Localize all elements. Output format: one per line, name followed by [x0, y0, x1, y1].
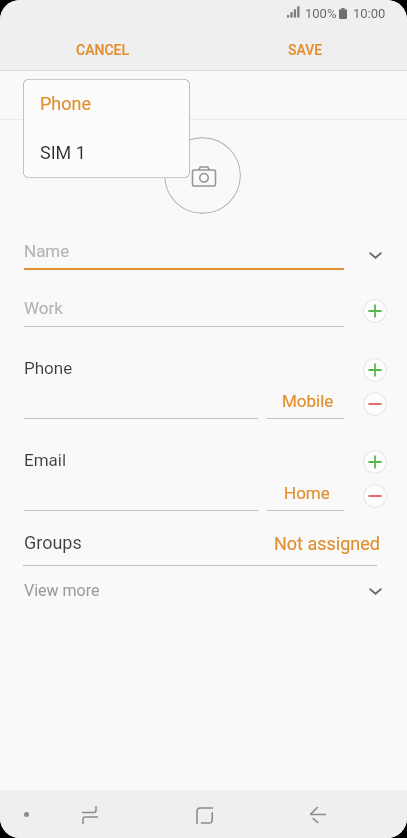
staticText: Home: [284, 483, 330, 503]
button[interactable]: Home: [183, 792, 227, 838]
button[interactable]: Back: [296, 791, 340, 838]
staticText: CANCEL: [76, 42, 130, 58]
staticText: Phone: [40, 93, 92, 114]
staticText: Name: [24, 241, 70, 261]
button[interactable]: Remove: [363, 484, 387, 508]
staticText: Mobile: [282, 391, 334, 411]
button[interactable]: Remove: [363, 392, 387, 416]
button[interactable]: Add: [363, 299, 387, 323]
staticText: Phone: [24, 358, 73, 378]
staticText: Work: [24, 298, 63, 318]
button[interactable]: Groups: [0, 524, 407, 565]
button[interactable]: Add: [363, 358, 387, 382]
button[interactable]: SIM 1: [23, 128, 190, 178]
button[interactable]: Expand name: [366, 246, 385, 265]
staticText: View more: [24, 581, 100, 600]
button[interactable]: Add contact photo: [164, 137, 241, 214]
staticText: Groups: [24, 532, 82, 553]
staticText: 100%: [305, 6, 337, 21]
button[interactable]: SAVE: [276, 34, 335, 66]
button[interactable]: Phone: [23, 79, 190, 128]
staticText: 10:00: [353, 6, 386, 21]
staticText: Email: [24, 450, 67, 470]
button[interactable]: View more: [0, 570, 407, 612]
button[interactable]: CANCEL: [64, 34, 142, 66]
staticText: SIM 1: [40, 142, 86, 163]
button[interactable]: Recent apps: [68, 791, 112, 838]
staticText: Not assigned: [274, 533, 380, 554]
button[interactable]: Add: [363, 450, 387, 474]
staticText: SAVE: [288, 42, 323, 58]
